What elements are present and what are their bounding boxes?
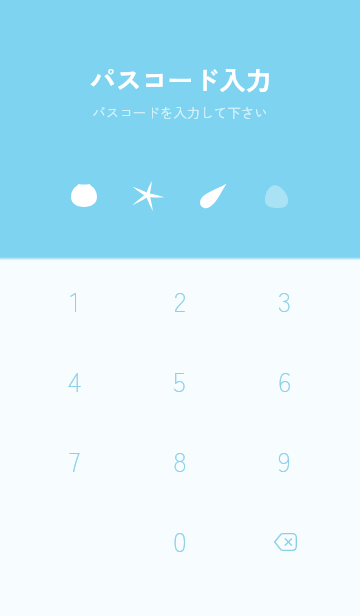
button[interactable]: Delete [232,500,337,580]
staticText: 1 [70,281,80,320]
button[interactable]: 8 [127,420,232,500]
staticText: 2 [174,281,186,320]
button[interactable]: 2 [127,260,232,340]
staticText: パスコード入力 [89,60,272,98]
staticText: 6 [278,361,292,400]
staticText: 5 [173,361,186,400]
staticText: 3 [278,281,292,320]
staticText: 4 [68,361,82,400]
staticText: パスコードを入力して下さい [92,102,268,122]
staticText: 9 [278,441,291,480]
button[interactable]: 1 [22,260,127,340]
button[interactable]: 6 [232,340,337,420]
button[interactable]: 5 [127,340,232,420]
staticText: 8 [173,441,187,480]
button[interactable]: 7 [22,420,127,500]
button[interactable]: 9 [232,420,337,500]
staticText: 0 [173,521,187,560]
other: Delete [263,518,307,562]
button[interactable]: 3 [232,260,337,340]
button[interactable]: 4 [22,340,127,420]
staticText: 7 [69,441,81,480]
button[interactable]: 0 [127,500,232,580]
